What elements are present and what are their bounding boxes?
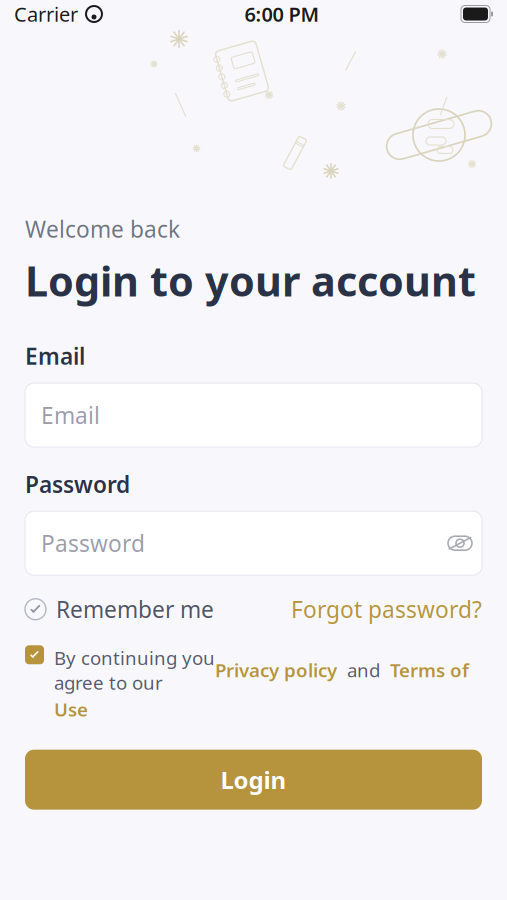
staticText: Login [220,764,286,796]
button[interactable]: Forgot password? [291,589,482,629]
staticText: Email [25,341,85,371]
button[interactable]: Agree to terms [25,645,44,664]
button[interactable]: Login [25,750,482,810]
staticText: Forgot password? [291,594,482,624]
staticText: Use [54,697,88,722]
staticText: and [337,658,390,682]
staticText: By continuing you agree to our [54,645,215,695]
staticText: Remember me [56,594,214,624]
staticText: Terms of [390,658,469,682]
button[interactable]: Remember me [25,589,214,629]
staticText: Carrier [14,1,78,27]
button[interactable]: Terms of [390,658,469,682]
staticText: 6:00 PM [244,1,319,27]
staticText: Password [25,469,130,499]
staticText: Login to your account [25,253,476,308]
staticText: Password [41,528,145,558]
staticText: Email [41,400,100,430]
button[interactable]: Use [54,697,88,722]
staticText: Welcome back [25,214,180,244]
staticText: Privacy policy [215,658,337,682]
button[interactable]: Show password [438,521,482,565]
button[interactable]: Privacy policy [215,658,337,682]
